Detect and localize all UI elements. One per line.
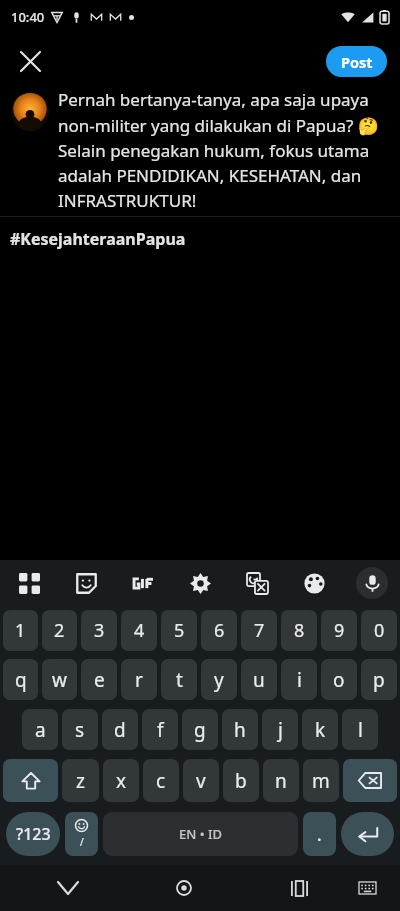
button[interactable]: Themes: [286, 560, 343, 606]
button[interactable]: l: [342, 709, 378, 750]
button[interactable]: t: [161, 659, 197, 700]
staticText: q: [15, 667, 27, 693]
staticText: 8: [294, 618, 305, 643]
staticText: i: [297, 667, 302, 693]
staticText: f: [157, 717, 164, 743]
staticText: 1: [15, 618, 26, 643]
button[interactable]: v: [183, 759, 219, 802]
staticText: u: [253, 667, 265, 693]
button[interactable]: 7: [241, 610, 277, 651]
button[interactable]: r: [121, 659, 157, 700]
button[interactable]: 1: [3, 610, 38, 651]
button[interactable]: h: [222, 709, 258, 750]
staticText: Post: [341, 52, 373, 72]
button[interactable]: ?123: [6, 812, 60, 856]
staticText: 0: [374, 618, 385, 643]
staticText: 6: [214, 618, 225, 643]
button[interactable]: Home: [148, 865, 220, 911]
staticText: .: [317, 823, 322, 846]
button[interactable]: Pernah bertanya-tanya, apa saja upaya no…: [0, 88, 400, 216]
staticText: s: [75, 717, 85, 743]
button[interactable]: 6: [201, 610, 237, 651]
staticText: x: [116, 768, 127, 794]
button[interactable]: n: [263, 759, 299, 802]
staticText: r: [135, 667, 143, 693]
staticText: /: [80, 835, 84, 849]
button[interactable]: Settings: [172, 560, 229, 606]
staticText: y: [214, 667, 224, 693]
button[interactable]: Emoji: [65, 812, 98, 856]
staticText: v: [196, 768, 206, 794]
staticText: g: [194, 717, 206, 743]
staticText: #KesejahteraanPapua: [10, 228, 186, 250]
button[interactable]: Clipboard: [0, 560, 58, 606]
staticText: Pernah bertanya-tanya, apa saja upaya no…: [58, 88, 390, 212]
staticText: l: [358, 717, 363, 743]
button[interactable]: GIF: [115, 560, 172, 606]
staticText: m: [312, 768, 330, 794]
staticText: 7: [254, 618, 265, 643]
staticText: ?123: [16, 823, 51, 845]
button[interactable]: 2: [42, 610, 77, 651]
staticText: 10:40: [11, 8, 45, 26]
button[interactable]: Backspace: [343, 759, 397, 802]
button[interactable]: Translate: [229, 560, 286, 606]
staticText: z: [76, 768, 85, 794]
staticText: 4: [134, 618, 145, 643]
button[interactable]: Voice input: [343, 560, 400, 606]
button[interactable]: j: [262, 709, 298, 750]
button[interactable]: x: [103, 759, 139, 802]
button[interactable]: m: [303, 759, 339, 802]
button[interactable]: Stickers: [58, 560, 115, 606]
button[interactable]: g: [182, 709, 218, 750]
button[interactable]: Space: [103, 812, 298, 856]
button[interactable]: 5: [161, 610, 197, 651]
button[interactable]: 9: [321, 610, 357, 651]
staticText: o: [333, 667, 345, 693]
button[interactable]: Recent apps: [263, 865, 335, 911]
staticText: d: [114, 717, 126, 743]
button[interactable]: Close: [8, 39, 52, 83]
button[interactable]: k: [302, 709, 338, 750]
button[interactable]: 3: [81, 610, 117, 651]
staticText: b: [235, 768, 247, 794]
button[interactable]: u: [241, 659, 277, 700]
staticText: 5: [174, 618, 185, 643]
button[interactable]: Post: [326, 46, 387, 77]
button[interactable]: Enter: [341, 812, 394, 856]
button[interactable]: p: [361, 659, 397, 700]
button[interactable]: Back: [31, 865, 104, 911]
staticText: 3: [94, 618, 105, 643]
staticText: t: [176, 667, 183, 693]
button[interactable]: z: [62, 759, 99, 802]
button[interactable]: 8: [281, 610, 317, 651]
button[interactable]: q: [3, 659, 38, 700]
staticText: w: [52, 667, 67, 693]
button[interactable]: 0: [361, 610, 397, 651]
button[interactable]: f: [142, 709, 178, 750]
staticText: k: [315, 717, 326, 743]
staticText: 2: [54, 618, 65, 643]
button[interactable]: c: [143, 759, 179, 802]
button[interactable]: w: [42, 659, 77, 700]
button[interactable]: o: [321, 659, 357, 700]
button[interactable]: y: [201, 659, 237, 700]
staticText: p: [373, 667, 385, 693]
staticText: 9: [334, 618, 345, 643]
staticText: e: [94, 667, 105, 693]
button[interactable]: Shift: [3, 759, 58, 802]
button[interactable]: e: [81, 659, 117, 700]
button[interactable]: a: [22, 709, 58, 750]
button[interactable]: 4: [121, 610, 157, 651]
button[interactable]: b: [223, 759, 259, 802]
staticText: a: [35, 717, 46, 743]
button[interactable]: i: [281, 659, 317, 700]
button[interactable]: .: [303, 812, 336, 856]
staticText: n: [275, 768, 287, 794]
staticText: h: [234, 717, 246, 743]
staticText: j: [278, 717, 283, 743]
button[interactable]: s: [62, 709, 98, 750]
button[interactable]: d: [102, 709, 138, 750]
staticText: EN • ID: [179, 825, 223, 843]
button[interactable]: Switch keyboard: [335, 865, 400, 911]
